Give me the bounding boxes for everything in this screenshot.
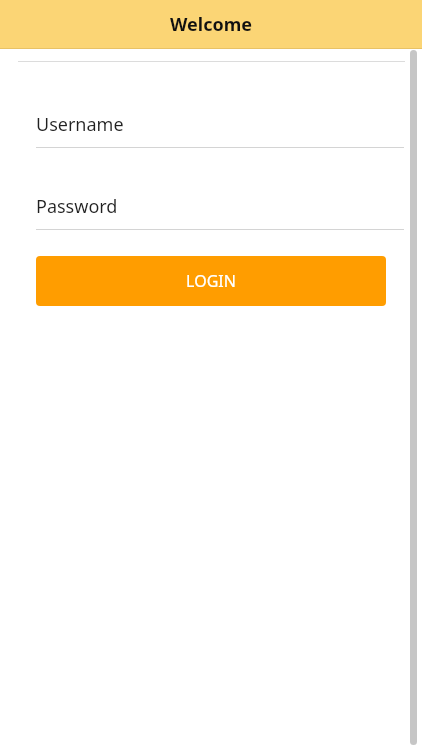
button[interactable]: Username [36,112,404,148]
staticText: LOGIN [186,270,236,292]
staticText: Welcome [170,12,252,37]
staticText: Username [36,112,124,137]
button[interactable]: Password [36,194,404,230]
button[interactable]: LOGIN [36,256,386,306]
staticText: Password [36,194,118,219]
